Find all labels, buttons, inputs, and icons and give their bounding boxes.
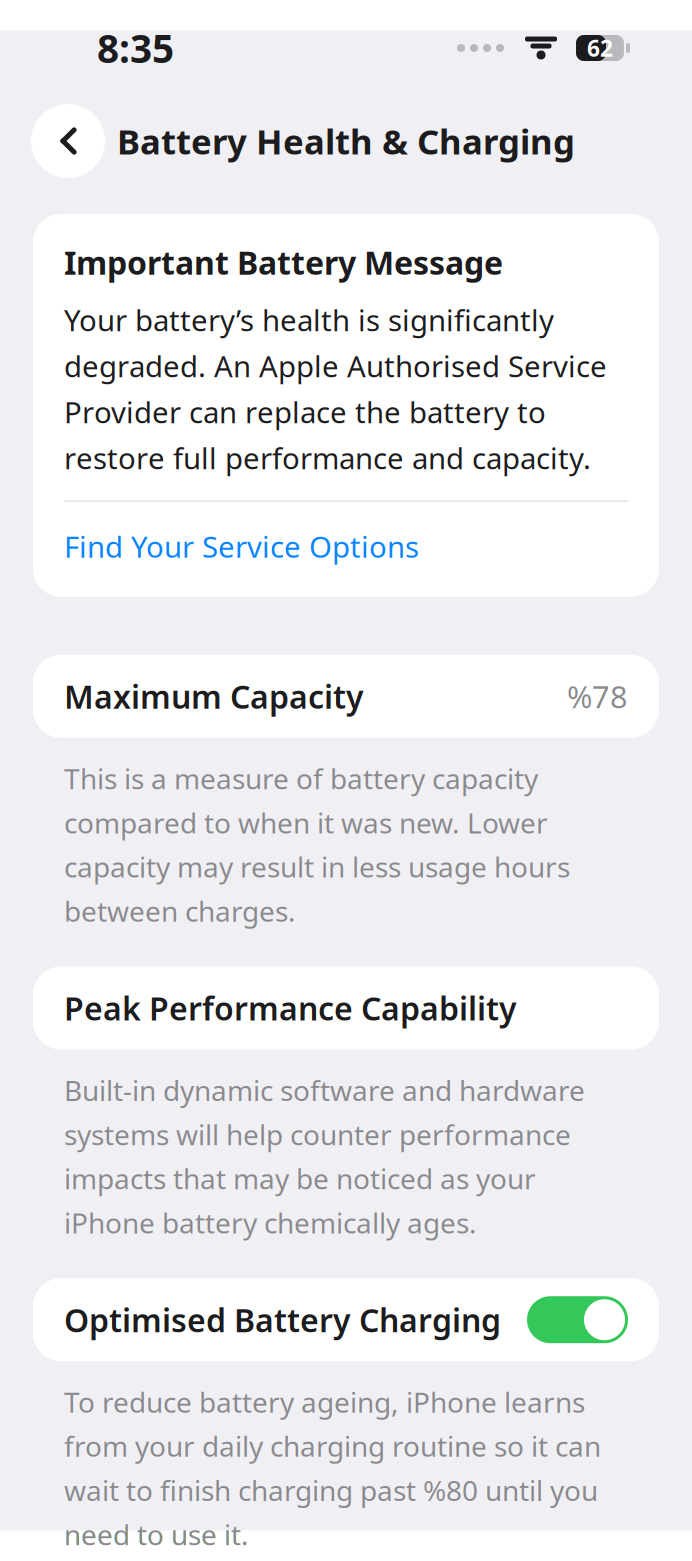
staticText: 8:35 xyxy=(97,22,174,74)
staticText: Peak Performance Capability xyxy=(64,987,517,1029)
button[interactable]: Optimised Battery Charging xyxy=(527,1296,628,1343)
staticText: Optimised Battery Charging xyxy=(64,1298,501,1341)
staticText: 62 xyxy=(587,33,613,63)
staticText: To reduce battery ageing, iPhone learns … xyxy=(64,1383,601,1553)
staticText: Your battery’s health is significantly d… xyxy=(64,300,607,477)
button[interactable]: Find Your Service Options xyxy=(64,527,628,566)
staticText: Maximum Capacity xyxy=(64,675,364,717)
staticText: Battery Health & Charging xyxy=(117,118,575,164)
staticText: Built-in dynamic software and hardware s… xyxy=(64,1071,585,1241)
button[interactable]: Back xyxy=(31,104,105,178)
staticText: Find Your Service Options xyxy=(64,527,419,566)
staticText: Important Battery Message xyxy=(64,241,503,283)
staticText: This is a measure of battery capacity co… xyxy=(64,760,570,929)
staticText: %78 xyxy=(567,676,628,717)
button[interactable]: Peak Performance Capability xyxy=(0,966,692,1049)
